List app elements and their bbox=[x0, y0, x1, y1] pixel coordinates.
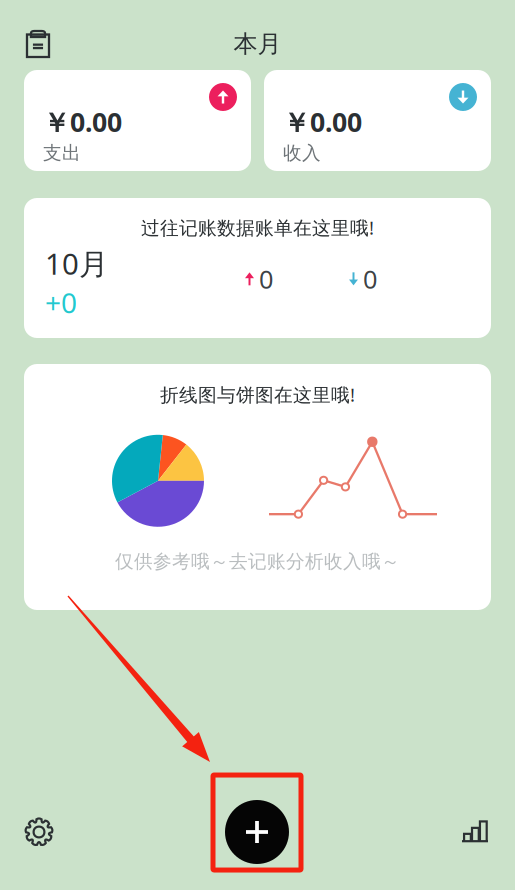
button[interactable]: ￥0.00 bbox=[24, 70, 251, 171]
button[interactable]: 折线图与饼图在这里哦! bbox=[24, 364, 491, 610]
button[interactable]: Settings bbox=[13, 804, 65, 860]
button[interactable]: Add record bbox=[225, 800, 289, 864]
staticText: 仅供参考哦～去记账分析收入哦～ bbox=[115, 550, 400, 573]
staticText: 支出 bbox=[43, 142, 81, 164]
staticText: ￥0.00 bbox=[283, 104, 362, 140]
staticText: ￥0.00 bbox=[43, 104, 122, 140]
button[interactable]: Records bbox=[0, 25, 49, 63]
staticText: +0 bbox=[45, 284, 77, 321]
staticText: 过往记账数据账单在这里哦! bbox=[141, 215, 374, 240]
staticText: 本月 bbox=[233, 29, 281, 59]
staticText: 0 bbox=[259, 262, 273, 296]
staticText: 收入 bbox=[283, 142, 321, 164]
button[interactable]: 过往记账数据账单在这里哦! bbox=[24, 198, 491, 338]
button[interactable]: Statistics bbox=[449, 804, 501, 859]
staticText: 0 bbox=[363, 262, 377, 296]
staticText: 折线图与饼图在这里哦! bbox=[160, 382, 355, 407]
button[interactable]: ￥0.00 bbox=[264, 70, 491, 171]
staticText: 10月 bbox=[45, 244, 108, 283]
